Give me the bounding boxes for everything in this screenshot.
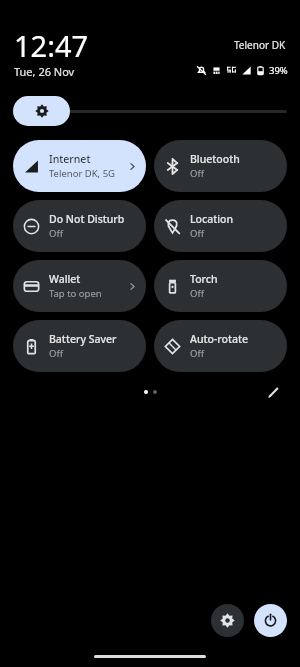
button[interactable]: Internet (13, 140, 146, 192)
button[interactable]: Wallet (13, 260, 146, 312)
button[interactable]: Power (254, 604, 287, 637)
staticText: Off (190, 227, 204, 240)
staticText: Telenor DK, 5G (49, 167, 115, 180)
button[interactable]: Battery Saver (13, 320, 146, 372)
staticText: Tue, 26 Nov (14, 64, 75, 79)
staticText: Off (49, 347, 63, 360)
staticText: 39% (269, 64, 288, 77)
staticText: Off (190, 347, 204, 360)
staticText: Wallet (49, 272, 81, 286)
staticText: Off (190, 167, 204, 180)
staticText: 12:47 (14, 26, 89, 65)
staticText: Telenor DK (234, 38, 286, 52)
button[interactable]: Torch (154, 260, 287, 312)
staticText: Do Not Disturb (49, 212, 125, 226)
button[interactable]: Auto-rotate (154, 320, 287, 372)
staticText: Auto-rotate (190, 332, 248, 346)
button[interactable]: Do Not Disturb (13, 200, 146, 252)
button[interactable]: Settings (211, 604, 244, 637)
staticText: Torch (190, 272, 218, 286)
staticText: Internet (49, 152, 91, 166)
staticText: Bluetooth (190, 152, 240, 166)
staticText: Off (49, 227, 63, 240)
staticText: Battery Saver (49, 332, 117, 346)
staticText: Tap to open (49, 287, 102, 300)
button[interactable]: Brightness (13, 96, 287, 126)
button[interactable]: Location (154, 200, 287, 252)
staticText: Off (190, 287, 204, 300)
button[interactable]: Edit tiles (262, 381, 284, 403)
staticText: Location (190, 212, 234, 226)
button[interactable]: Bluetooth (154, 140, 287, 192)
